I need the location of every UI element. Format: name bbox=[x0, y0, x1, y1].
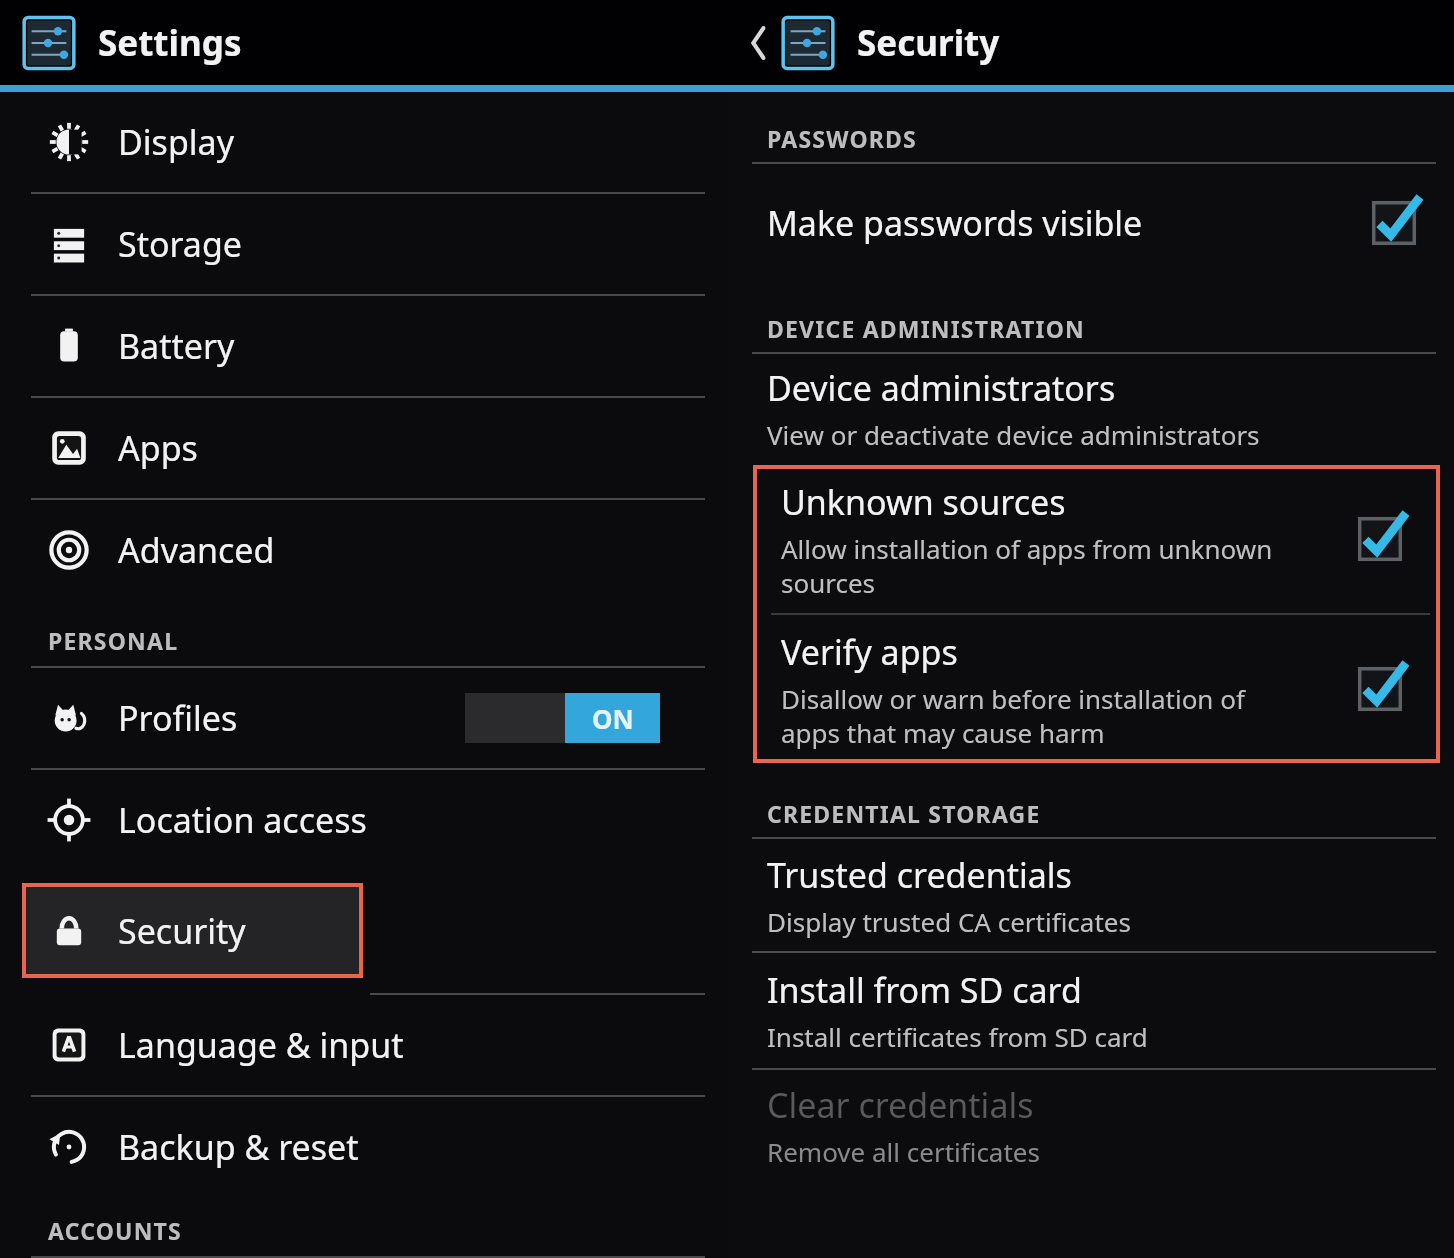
button[interactable]: ON bbox=[465, 693, 660, 743]
staticText: Advanced bbox=[118, 527, 275, 573]
staticText: Storage bbox=[118, 221, 243, 267]
button[interactable]: Toggle Verify apps bbox=[1320, 615, 1440, 763]
button[interactable]: Backup & reset bbox=[0, 1097, 727, 1197]
button[interactable]: Device administrators bbox=[727, 354, 1454, 462]
staticText: Unknown sources bbox=[781, 479, 1066, 525]
button[interactable]: Storage bbox=[0, 194, 727, 294]
staticText: PASSWORDS bbox=[767, 123, 917, 154]
button[interactable]: Back bbox=[739, 13, 779, 73]
staticText: Install certificates from SD card bbox=[767, 1019, 1148, 1054]
button[interactable]: Security bbox=[22, 883, 363, 978]
button[interactable]: Make passwords visible bbox=[727, 164, 1454, 282]
button[interactable]: Advanced bbox=[0, 500, 727, 600]
button[interactable]: Battery bbox=[0, 296, 727, 396]
button[interactable]: Toggle Unknown sources bbox=[1320, 465, 1440, 613]
staticText: CREDENTIAL STORAGE bbox=[767, 798, 1041, 829]
staticText: Settings bbox=[98, 19, 242, 67]
button[interactable]: Language & input bbox=[0, 995, 727, 1095]
button[interactable]: Install from SD card bbox=[727, 953, 1454, 1068]
button[interactable]: Trusted credentials bbox=[727, 839, 1454, 951]
staticText: Battery bbox=[118, 323, 235, 369]
staticText: PERSONAL bbox=[48, 625, 179, 656]
staticText: Security bbox=[857, 19, 1000, 67]
staticText: Make passwords visible bbox=[767, 200, 1143, 246]
staticText: DEVICE ADMINISTRATION bbox=[767, 313, 1085, 344]
button[interactable]: Apps bbox=[0, 398, 727, 498]
staticText: Verify apps bbox=[781, 629, 958, 675]
staticText: Apps bbox=[118, 425, 198, 471]
button[interactable]: Display bbox=[0, 92, 727, 192]
staticText: Security bbox=[118, 908, 246, 954]
staticText: Profiles bbox=[118, 695, 238, 741]
staticText: View or deactivate device administrators bbox=[767, 417, 1260, 452]
staticText: Trusted credentials bbox=[767, 852, 1072, 898]
staticText: Remove all certificates bbox=[767, 1134, 1040, 1169]
button[interactable]: Toggle Make passwords visible bbox=[1334, 164, 1454, 282]
staticText: Display trusted CA certificates bbox=[767, 904, 1131, 939]
staticText: Install from SD card bbox=[767, 967, 1082, 1013]
staticText: ON bbox=[592, 701, 634, 736]
staticText: Display bbox=[118, 119, 234, 165]
staticText: Backup & reset bbox=[118, 1124, 359, 1170]
staticText: Location access bbox=[118, 797, 367, 843]
staticText: Clear credentials bbox=[767, 1082, 1034, 1128]
button[interactable]: Profiles bbox=[0, 668, 727, 768]
staticText: Disallow or warn before installation of … bbox=[781, 681, 1245, 750]
staticText: Device administrators bbox=[767, 365, 1116, 411]
staticText: ACCOUNTS bbox=[48, 1215, 182, 1246]
staticText: Language & input bbox=[118, 1022, 404, 1068]
button[interactable]: Location access bbox=[0, 770, 727, 870]
staticText: Allow installation of apps from unknown … bbox=[781, 531, 1273, 600]
